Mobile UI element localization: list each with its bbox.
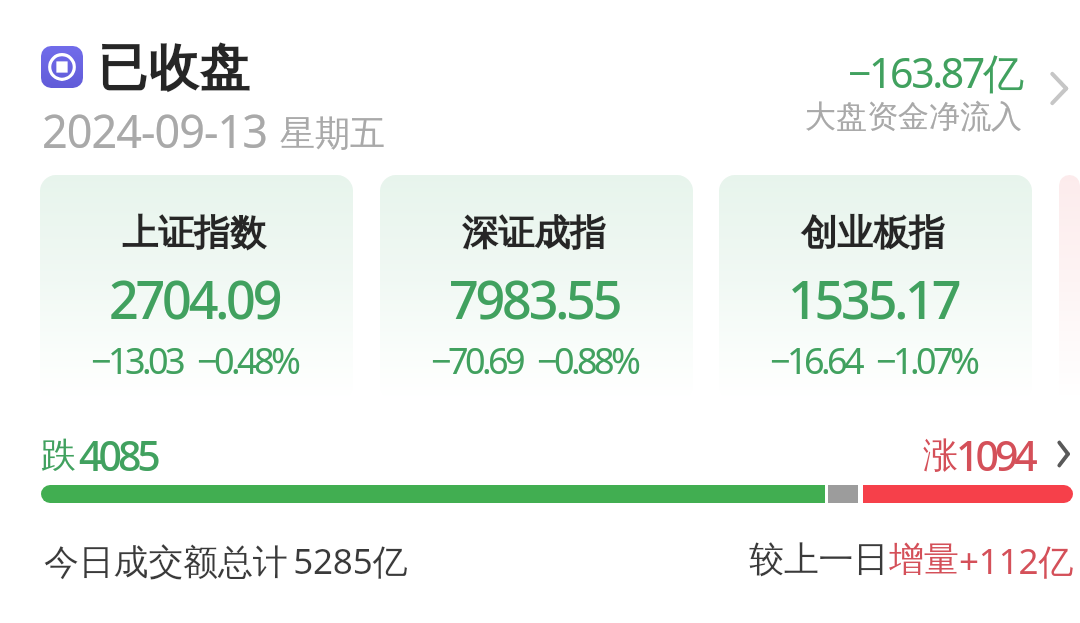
button[interactable]: 跌 xyxy=(41,422,171,478)
staticText: 跌 xyxy=(41,433,76,477)
staticText: 上证指数 xyxy=(122,210,266,255)
staticText: −1.07% xyxy=(876,336,977,385)
staticText: 深证成指 xyxy=(462,210,606,255)
staticText: 今日成交额总计 5285亿 xyxy=(44,537,408,585)
staticText: −0.48% xyxy=(197,336,298,385)
staticText: −0.88% xyxy=(537,336,638,385)
button[interactable]: 创业板指 xyxy=(719,175,1032,401)
staticText: +112亿 xyxy=(959,537,1074,582)
button[interactable]: Market closed xyxy=(41,37,250,100)
button[interactable]: 涨 xyxy=(912,422,1080,478)
button[interactable]: 深证成指 xyxy=(380,175,693,401)
staticText: 已收盘 xyxy=(97,37,250,100)
staticText: 增量 xyxy=(889,537,959,581)
staticText: 2704.09 xyxy=(109,263,280,334)
staticText: 7983.55 xyxy=(449,263,620,334)
staticText: −70.69 xyxy=(431,336,523,385)
staticText: 1094 xyxy=(956,427,1034,483)
button[interactable]: −163.87亿 xyxy=(785,44,1022,136)
other: More breadth xyxy=(1056,441,1071,467)
staticText: 大盘资金净流入 xyxy=(805,97,1022,136)
staticText: 1535.17 xyxy=(788,263,959,334)
button[interactable]: 上证指数 xyxy=(40,175,353,401)
button[interactable]: 较上一日 xyxy=(740,528,1080,582)
staticText: −13.03 xyxy=(91,336,183,385)
staticText: −163.87亿 xyxy=(848,44,1022,100)
staticText: 涨 xyxy=(923,433,958,477)
staticText: 创业板指 xyxy=(801,210,945,255)
staticText: 4085 xyxy=(79,427,157,483)
button[interactable]: 今日成交额总计 5285亿 xyxy=(30,528,420,582)
staticText: 2024-09-13 xyxy=(42,100,267,161)
staticText: 星期五 xyxy=(280,111,385,155)
staticText: −16.64 xyxy=(770,336,862,385)
staticText: 较上一日 xyxy=(749,537,889,581)
other: More fund flow xyxy=(1047,72,1071,105)
other: Market closed xyxy=(41,46,83,88)
